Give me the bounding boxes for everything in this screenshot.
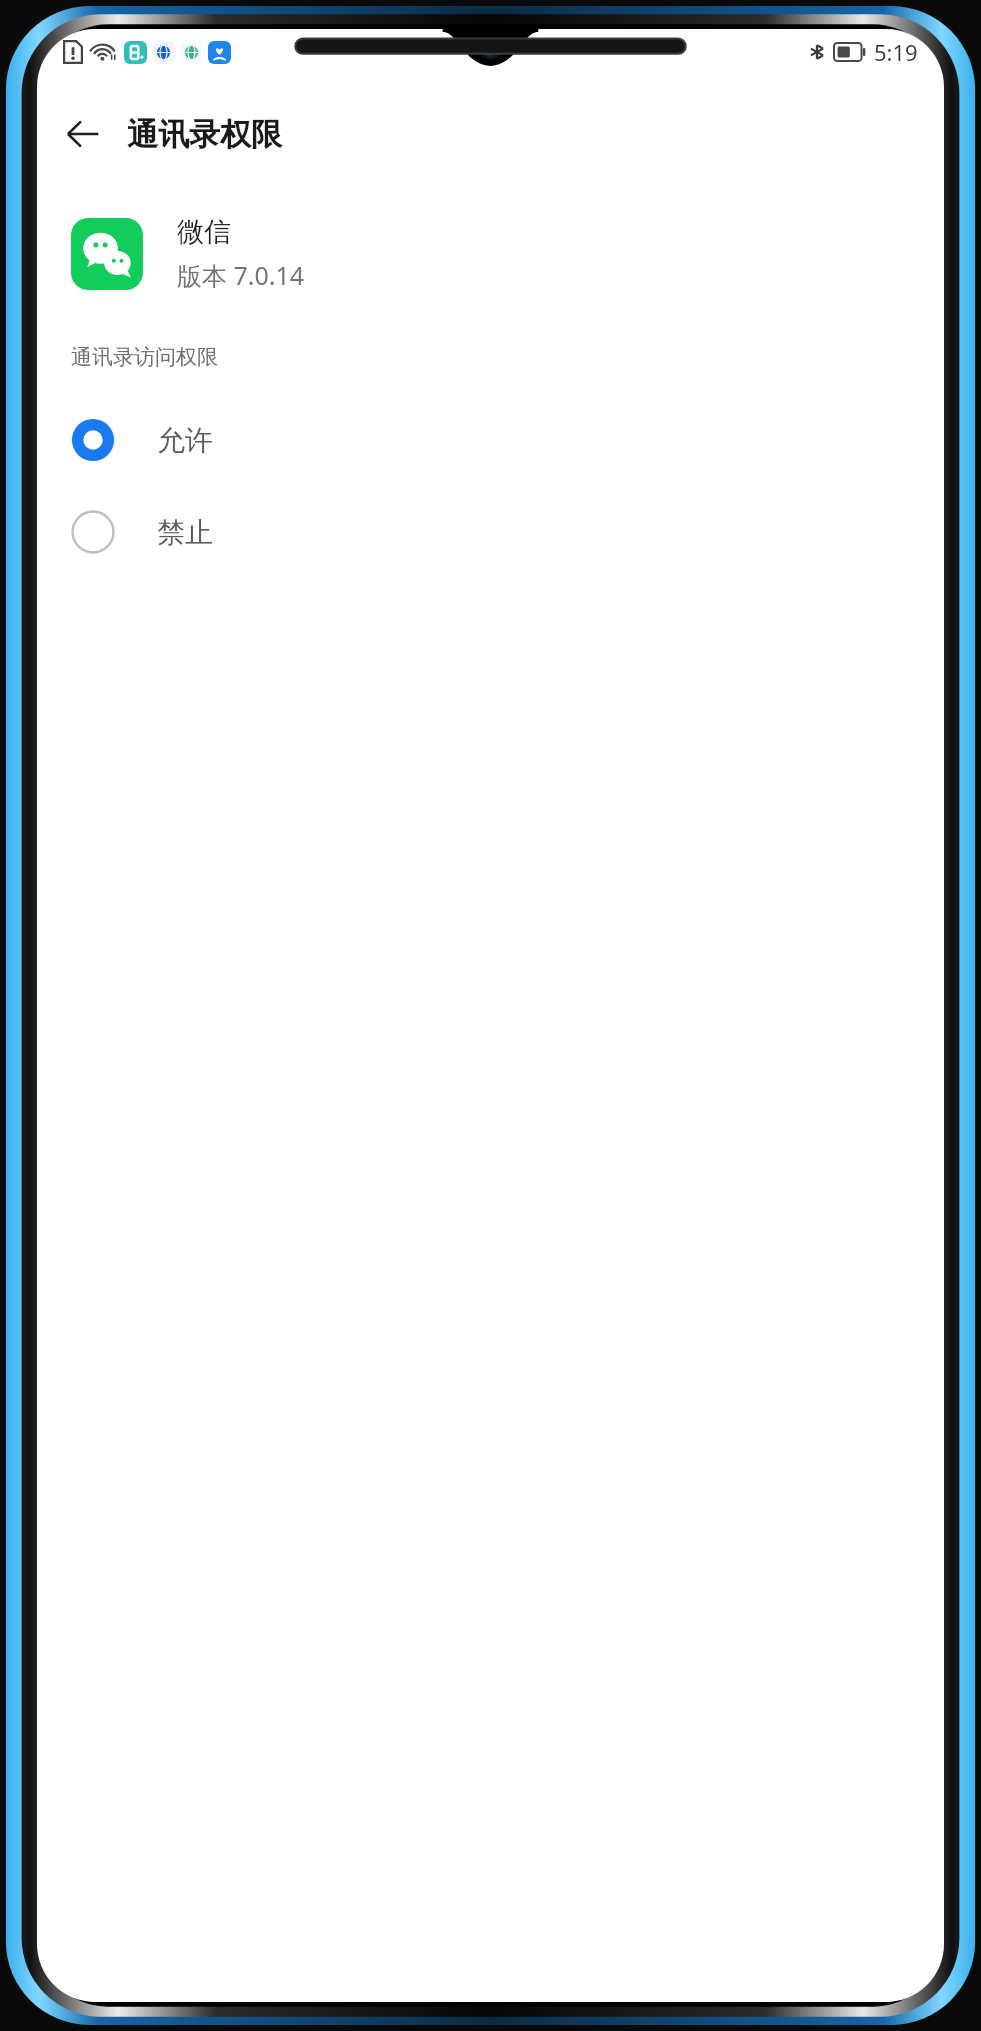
staticText: 通讯录访问权限 xyxy=(71,344,218,370)
button[interactable]: 允许 xyxy=(37,394,944,486)
button[interactable]: 禁止 xyxy=(37,486,944,578)
staticText: 允许 xyxy=(157,423,213,458)
staticText: 微信 xyxy=(177,215,231,249)
button[interactable]: 返回 xyxy=(55,106,111,162)
staticText: 通讯录权限 xyxy=(127,115,282,154)
staticText: 版本 7.0.14 xyxy=(177,258,305,292)
staticText: 5:19 xyxy=(874,37,918,67)
staticText: 禁止 xyxy=(157,515,213,550)
